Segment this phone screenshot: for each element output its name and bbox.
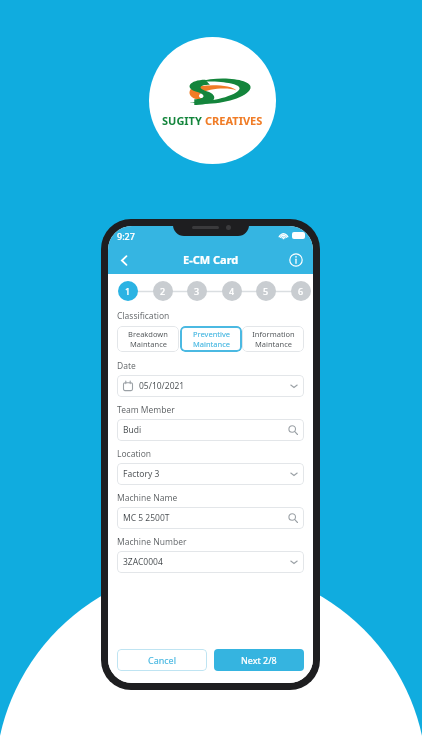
button[interactable]: 5 xyxy=(256,281,276,301)
button[interactable]: MC 5 2500T xyxy=(117,507,304,529)
button[interactable]: 3ZAC0004 xyxy=(117,551,304,573)
staticText: Information xyxy=(252,329,295,339)
button[interactable]: Factory 3 xyxy=(117,463,304,485)
staticText: 1 xyxy=(125,285,131,297)
button[interactable]: Information xyxy=(242,326,304,352)
staticText: Machine Number xyxy=(117,536,187,548)
button[interactable]: 2 xyxy=(153,281,173,301)
staticText: Location xyxy=(117,448,152,460)
staticText: Cancel xyxy=(148,654,177,666)
button[interactable]: Information xyxy=(285,249,307,271)
button[interactable]: Cancel xyxy=(117,649,207,671)
staticText: Machine Name xyxy=(117,492,178,504)
staticText: Date xyxy=(117,360,136,372)
staticText: Classification xyxy=(117,310,170,322)
button[interactable]: 3 xyxy=(187,281,207,301)
staticText: Maintance xyxy=(193,339,230,349)
button[interactable]: 4 xyxy=(222,281,242,301)
button[interactable]: Next 2/8 xyxy=(214,649,304,671)
staticText: Team Member xyxy=(117,404,175,416)
button[interactable]: Back xyxy=(113,249,135,271)
staticText: MC 5 2500T xyxy=(123,512,288,524)
staticText: 9:27 xyxy=(117,230,135,242)
staticText: 6 xyxy=(298,285,304,297)
staticText: Budi xyxy=(123,424,288,436)
button[interactable]: Preventive xyxy=(180,326,242,352)
staticText: 4 xyxy=(229,285,235,297)
staticText: Preventive xyxy=(193,329,230,339)
staticText: Next 2/8 xyxy=(241,654,277,666)
staticText: Maintance xyxy=(130,339,167,349)
staticText: Maintance xyxy=(255,339,292,349)
staticText: Factory 3 xyxy=(123,468,290,480)
staticText: 2 xyxy=(160,285,166,297)
button[interactable]: Budi xyxy=(117,419,304,441)
staticText: Breakdown xyxy=(128,329,168,339)
staticText: 5 xyxy=(263,285,269,297)
button[interactable]: 6 xyxy=(291,281,311,301)
staticText: 05/10/2021 xyxy=(139,380,290,392)
staticText: SUGITY xyxy=(162,113,205,128)
staticText: 3ZAC0004 xyxy=(123,556,290,568)
button[interactable]: 1 xyxy=(118,281,138,301)
button[interactable]: Breakdown xyxy=(117,326,179,352)
staticText: 3 xyxy=(194,285,200,297)
button[interactable]: 05/10/2021 xyxy=(117,375,304,397)
staticText: CREATIVES xyxy=(205,113,263,128)
staticText: E-CM Card xyxy=(183,252,239,267)
